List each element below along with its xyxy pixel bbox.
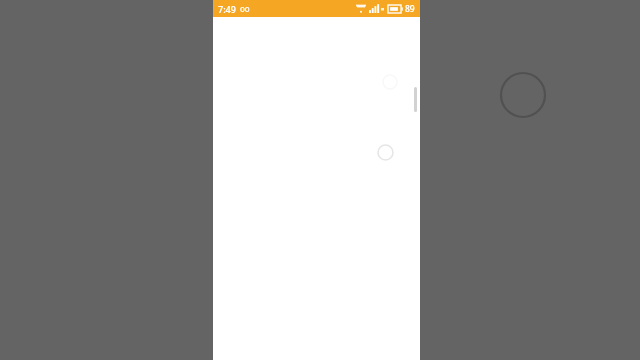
button[interactable]: 7:49 [213, 0, 420, 17]
other: Cellular signal strength [369, 4, 379, 13]
other: Loading [377, 144, 394, 161]
staticText: 89 [405, 3, 415, 15]
other: Decorative circle [499, 71, 547, 119]
staticText: 7:49 [218, 3, 236, 15]
other: Battery 89 percent [388, 5, 403, 13]
other: Wi-Fi signal [356, 4, 366, 13]
staticText: oo [240, 3, 250, 14]
